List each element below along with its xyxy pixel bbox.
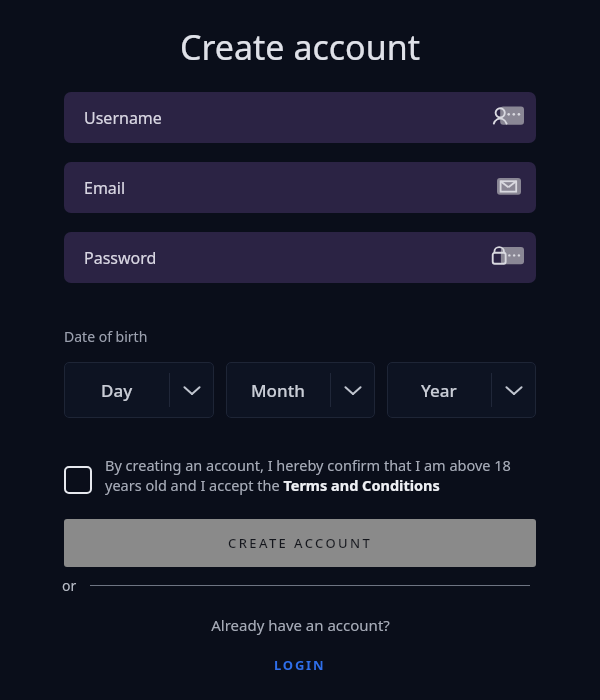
other: Username — [490, 105, 524, 131]
staticText: Create account — [180, 24, 420, 70]
button[interactable]: LOGIN — [264, 653, 336, 677]
other: Password — [490, 245, 524, 271]
staticText: Email — [84, 177, 494, 199]
other: Email — [494, 175, 524, 201]
button[interactable]: Month — [226, 362, 375, 418]
button[interactable]: Day — [64, 362, 214, 418]
staticText: Year — [421, 379, 457, 402]
button[interactable]: By creating an account, I hereby confirm… — [64, 455, 536, 495]
staticText: LOGIN — [274, 656, 326, 674]
staticText: Already have an account? — [211, 615, 390, 635]
staticText: Password — [84, 247, 490, 269]
staticText: By creating an account, I hereby confirm… — [105, 455, 536, 495]
button[interactable]: Password — [64, 232, 536, 283]
staticText: Day — [101, 379, 133, 402]
button[interactable]: Username — [64, 92, 536, 143]
button[interactable]: Year — [387, 362, 536, 418]
staticText: or — [62, 576, 77, 595]
staticText: CREATE ACCOUNT — [228, 534, 373, 552]
staticText: Date of birth — [64, 327, 148, 346]
staticText: Username — [84, 107, 490, 129]
button[interactable]: CREATE ACCOUNT — [64, 519, 536, 567]
button[interactable]: Email — [64, 162, 536, 213]
staticText: Month — [251, 379, 305, 402]
